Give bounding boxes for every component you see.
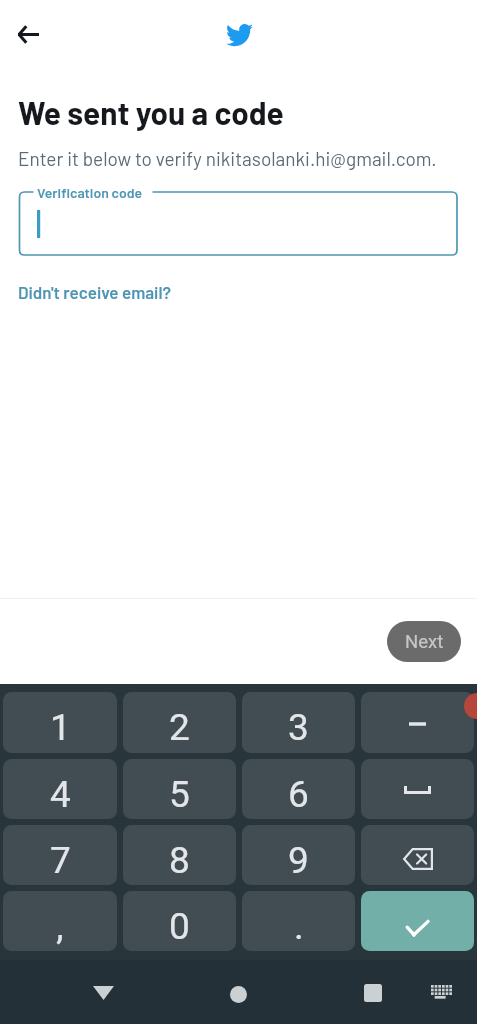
button[interactable]: .	[242, 891, 355, 951]
other: Enter	[406, 920, 429, 937]
other: Space	[404, 786, 431, 794]
staticText: 8	[169, 839, 190, 882]
button[interactable]: Backspace	[361, 825, 474, 885]
staticText: 4	[50, 773, 71, 816]
staticText: ,	[56, 905, 64, 948]
staticText: Next	[405, 631, 444, 653]
staticText: 1	[50, 706, 71, 749]
staticText: 6	[288, 773, 309, 816]
staticText: Verification code	[37, 184, 143, 201]
staticText: We sent you a code	[18, 93, 284, 131]
staticText: 2	[169, 706, 190, 749]
button[interactable]: 1	[3, 692, 117, 753]
button[interactable]: Enter	[361, 891, 474, 951]
button[interactable]: Recent apps	[353, 973, 393, 1013]
button[interactable]: 2	[123, 692, 236, 753]
button[interactable]: Dash	[361, 692, 474, 753]
button[interactable]: 8	[123, 825, 236, 885]
button[interactable]: Verification code	[0, 185, 477, 265]
button[interactable]: 5	[123, 759, 236, 819]
staticText: 9	[288, 839, 309, 882]
button[interactable]: Space	[361, 759, 474, 819]
staticText: 7	[50, 839, 71, 882]
staticText: .	[294, 905, 304, 948]
button[interactable]: 7	[3, 825, 117, 885]
button[interactable]: Home	[218, 974, 258, 1014]
button[interactable]: Switch keyboard	[421, 972, 461, 1012]
button[interactable]: 0	[123, 891, 236, 951]
staticText: 0	[169, 905, 190, 948]
button[interactable]: 4	[3, 759, 117, 819]
button[interactable]: 6	[242, 759, 355, 819]
button[interactable]: Back	[5, 10, 53, 58]
button[interactable]: ,	[3, 891, 117, 951]
other: Backspace	[403, 848, 433, 870]
other: Dash	[409, 718, 426, 730]
staticText: 3	[288, 706, 309, 749]
button[interactable]: Didn't receive email?	[18, 282, 172, 302]
button[interactable]: Back	[83, 973, 123, 1013]
button[interactable]: Next	[387, 621, 461, 662]
staticText: 5	[169, 773, 190, 816]
button[interactable]: 3	[242, 692, 355, 753]
staticText: Enter it below to verify nikitasolanki.h…	[18, 147, 437, 170]
button[interactable]: 9	[242, 825, 355, 885]
